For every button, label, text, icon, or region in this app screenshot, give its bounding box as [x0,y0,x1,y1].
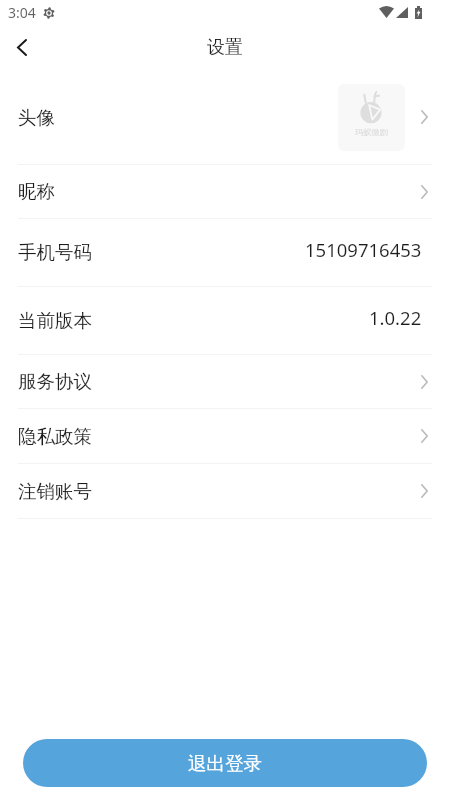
staticText: 1.0.22 [369,305,422,330]
button[interactable]: 注销账号 [0,464,450,518]
button[interactable]: Back [0,25,44,69]
staticText: 隐私政策 [18,425,92,448]
staticText: 退出登录 [188,752,263,775]
staticText: 注销账号 [18,480,92,503]
staticText: 当前版本 [18,309,92,332]
staticText: 昵称 [18,180,55,203]
button[interactable]: 隐私政策 [0,409,450,463]
button[interactable]: Open [421,372,432,392]
staticText: 服务协议 [18,370,92,393]
staticText: 手机号码 [18,241,92,264]
button[interactable]: 服务协议 [0,355,450,408]
button[interactable]: Open [421,481,432,501]
staticText: 头像 [18,106,55,129]
button[interactable]: 退出登录 [23,739,427,787]
button[interactable]: 当前版本 [0,287,450,354]
button[interactable]: Open [421,426,432,446]
button[interactable]: 手机号码 [0,219,450,286]
staticText: 玛蚁微剧 [355,127,388,137]
button[interactable]: 头像 [0,70,450,164]
button[interactable]: Open [421,107,432,127]
button[interactable]: Open [421,182,432,202]
staticText: 3:04 [8,3,36,22]
staticText: 设置 [207,36,243,58]
button[interactable]: 昵称 [0,165,450,218]
staticText: 15109716453 [305,237,422,262]
